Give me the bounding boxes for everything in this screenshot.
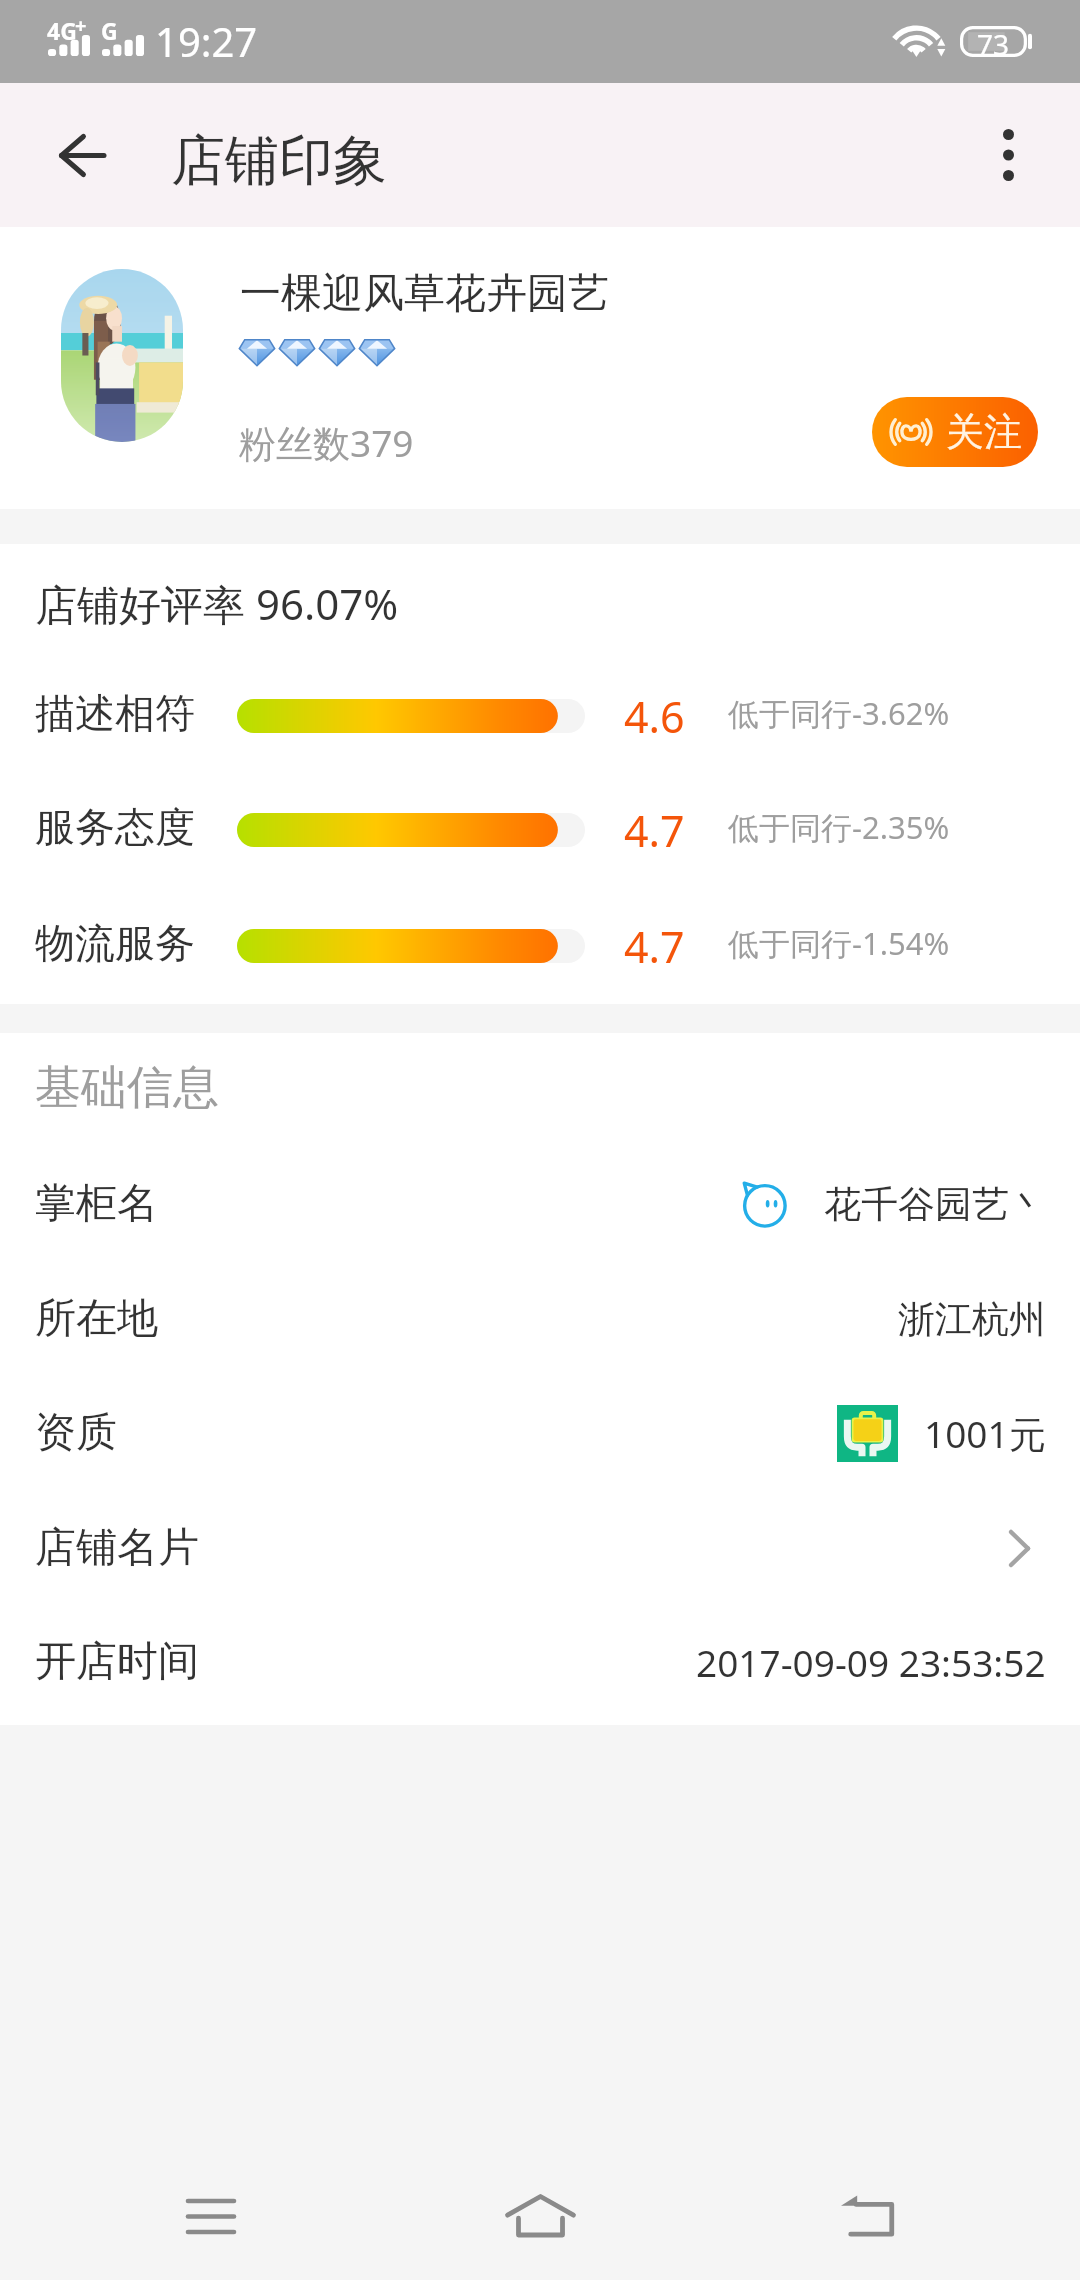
button[interactable]: Back bbox=[808, 2166, 928, 2266]
staticText: 物流服务 bbox=[35, 918, 195, 968]
staticText: 4.6 bbox=[624, 687, 685, 739]
staticText: 浙江杭州 bbox=[898, 1296, 1046, 1343]
staticText: 低于同行-3.62% bbox=[728, 692, 950, 734]
staticText: 粉丝数379 bbox=[239, 417, 414, 468]
button[interactable]: 所在地 bbox=[0, 1262, 1080, 1376]
staticText: 店铺好评率 96.07% bbox=[35, 575, 399, 632]
staticText: 花千谷园艺丶 bbox=[824, 1181, 1046, 1228]
staticText: 2017-09-09 23:53:52 bbox=[696, 1637, 1046, 1687]
staticText: 所在地 bbox=[35, 1293, 158, 1345]
staticText: 73 bbox=[977, 25, 1010, 56]
staticText: 19:27 bbox=[155, 14, 258, 68]
staticText: 基础信息 bbox=[35, 1059, 219, 1117]
button[interactable]: 掌柜名 bbox=[0, 1147, 1080, 1261]
staticText: 开店时间 bbox=[35, 1636, 199, 1688]
staticText: 低于同行-2.35% bbox=[728, 806, 950, 848]
button[interactable]: 关注 bbox=[872, 397, 1038, 467]
staticText: 1001元 bbox=[924, 1408, 1046, 1459]
staticText: 店铺名片 bbox=[35, 1522, 199, 1574]
button[interactable]: More options bbox=[962, 109, 1054, 201]
staticText: 4G bbox=[47, 15, 77, 46]
staticText: 关注 bbox=[946, 408, 1022, 456]
staticText: 一棵迎风草花卉园艺 bbox=[240, 268, 609, 320]
staticText: 低于同行-1.54% bbox=[728, 922, 950, 964]
button[interactable]: 资质 bbox=[0, 1376, 1080, 1490]
staticText: + bbox=[75, 12, 87, 39]
staticText: 描述相符 bbox=[35, 688, 195, 738]
button[interactable]: 开店时间 bbox=[0, 1605, 1080, 1719]
staticText: 4.7 bbox=[624, 801, 685, 853]
button[interactable]: Recent apps bbox=[151, 2166, 271, 2266]
button[interactable]: Home bbox=[480, 2166, 600, 2266]
staticText: G bbox=[101, 15, 118, 46]
staticText: 服务态度 bbox=[35, 802, 195, 852]
staticText: 资质 bbox=[35, 1407, 117, 1459]
button[interactable]: 店铺名片 bbox=[0, 1491, 1080, 1605]
button[interactable]: Shop avatar bbox=[61, 269, 183, 442]
staticText: 掌柜名 bbox=[35, 1178, 158, 1230]
staticText: 店铺印象 bbox=[171, 127, 387, 195]
button[interactable]: Back bbox=[36, 109, 128, 201]
staticText: 4.7 bbox=[624, 917, 685, 969]
